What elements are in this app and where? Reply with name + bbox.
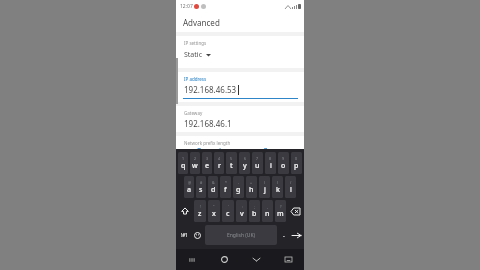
staticText: . [283, 230, 285, 240]
staticText: j [264, 185, 266, 195]
button[interactable]: & [208, 176, 218, 198]
staticText: m [277, 209, 284, 219]
staticText: o [281, 161, 286, 171]
staticText: @ [188, 180, 192, 185]
staticText: Cancel [196, 146, 221, 149]
button[interactable]: * [220, 176, 231, 198]
staticText: v [240, 209, 244, 219]
staticText: Gateway [184, 110, 203, 116]
button[interactable]: 8 [265, 152, 276, 174]
button[interactable]: 1 [178, 152, 188, 174]
staticText: ; [254, 204, 255, 209]
staticText: IP address [184, 76, 207, 82]
staticText: t [230, 161, 233, 171]
staticText: , [267, 204, 268, 209]
staticText: x [212, 209, 216, 219]
button[interactable]: ( [259, 176, 270, 198]
button[interactable]: Home [208, 249, 240, 270]
staticText: ' [228, 204, 229, 209]
staticText: & [212, 180, 215, 185]
staticText: IP settings [184, 40, 207, 46]
button[interactable]: . [279, 223, 289, 247]
button[interactable]: Symbols [177, 223, 191, 247]
button[interactable]: / [285, 176, 296, 198]
staticText: u [255, 161, 260, 171]
staticText: 4 [218, 156, 221, 161]
button[interactable]: ' [222, 200, 234, 222]
staticText: + [250, 180, 253, 185]
button[interactable]: Recents [176, 249, 208, 270]
staticText: * [225, 180, 227, 185]
staticText: 1 [182, 156, 185, 161]
staticText: 2 [194, 156, 197, 161]
button[interactable]: ! [194, 200, 206, 222]
button[interactable]: 5 [226, 152, 237, 174]
staticText: 192.168.46.1 [184, 118, 232, 129]
button[interactable]: 6 [239, 152, 250, 174]
button[interactable]: Shift [178, 200, 192, 222]
button[interactable]: , [262, 200, 273, 222]
staticText: h [249, 185, 254, 195]
staticText: " [213, 204, 215, 209]
button[interactable]: Hide keyboard [240, 249, 272, 270]
button[interactable]: Static [184, 50, 211, 60]
staticText: s [199, 185, 203, 195]
button[interactable]: 4 [214, 152, 224, 174]
staticText: 192.168.46.53 [184, 84, 237, 95]
button[interactable]: Cancel [176, 146, 240, 149]
button[interactable]: + [246, 176, 257, 198]
button[interactable]: Save [240, 146, 304, 149]
staticText: Advanced [183, 17, 220, 28]
staticText: 7 [256, 156, 259, 161]
staticText: g [236, 185, 241, 195]
staticText: p [294, 161, 299, 171]
staticText: - [238, 180, 240, 185]
staticText: f [224, 185, 227, 195]
button[interactable]: ? [275, 200, 286, 222]
staticText: 6 [244, 156, 247, 161]
staticText: 0 [295, 156, 298, 161]
button[interactable]: Change keyboard [272, 249, 304, 270]
staticText: 9 [282, 156, 285, 161]
staticText: English (UK) [227, 232, 256, 239]
staticText: c [226, 209, 230, 219]
button[interactable]: 7 [252, 152, 263, 174]
staticText: y [243, 161, 247, 171]
staticText: d [211, 185, 216, 195]
button[interactable]: # [196, 176, 206, 198]
button[interactable]: 0 [291, 152, 302, 174]
button[interactable]: Emoji [191, 223, 203, 247]
staticText: 12:07 [180, 3, 193, 10]
staticText: # [200, 180, 203, 185]
staticText: Static [184, 50, 202, 60]
staticText: i [270, 161, 272, 171]
button[interactable]: 2 [190, 152, 200, 174]
button[interactable]: English (UK) [205, 225, 277, 245]
staticText: n [265, 209, 270, 219]
staticText: ) [277, 180, 279, 185]
button[interactable]: Enter [289, 223, 303, 247]
staticText: Network prefix length [184, 140, 231, 146]
button[interactable]: ) [272, 176, 283, 198]
staticText: z [198, 209, 202, 219]
staticText: 5 [230, 156, 233, 161]
button[interactable]: : [236, 200, 247, 222]
button[interactable]: " [208, 200, 220, 222]
staticText: / [290, 180, 292, 185]
button[interactable]: @ [184, 176, 194, 198]
staticText: e [205, 161, 210, 171]
staticText: ? [280, 204, 282, 209]
staticText: : [242, 204, 243, 209]
staticText: q [181, 161, 186, 171]
button[interactable]: ; [249, 200, 260, 222]
button[interactable]: 3 [202, 152, 212, 174]
staticText: a [187, 185, 192, 195]
button[interactable]: Backspace [288, 200, 302, 222]
staticText: b [252, 209, 257, 219]
staticText: Save [263, 146, 281, 149]
button[interactable]: - [233, 176, 244, 198]
staticText: !#1 [181, 232, 188, 238]
staticText: w [192, 161, 198, 171]
staticText: ! [200, 204, 201, 209]
button[interactable]: 9 [278, 152, 289, 174]
